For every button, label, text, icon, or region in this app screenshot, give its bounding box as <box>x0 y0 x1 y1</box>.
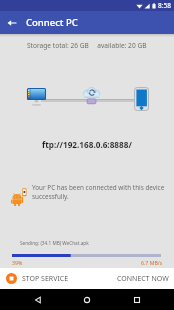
staticText: Storage total: 26 GB available: 20 GB <box>27 41 147 50</box>
staticText: STOP SERVICE <box>22 274 69 284</box>
staticText: ftp://192.168.0.6:8888/ <box>42 139 132 150</box>
staticText: Your PC has been connected with this dev… <box>32 183 168 201</box>
staticText: CONNECT NOW <box>117 274 169 284</box>
staticText: 39% <box>12 259 23 266</box>
button[interactable]: Home <box>75 289 99 310</box>
staticText: 8:58 <box>158 1 171 10</box>
button[interactable]: STOP SERVICE <box>0 268 87 289</box>
staticText: Connect PC <box>26 16 78 29</box>
staticText: 6.7 MB/s <box>141 259 163 266</box>
staticText: Sending: (34.1 MB) WeChat.apk <box>20 240 89 246</box>
button[interactable]: Back <box>0 11 23 34</box>
button[interactable]: CONNECT NOW <box>87 268 174 289</box>
button[interactable]: Back <box>26 289 50 310</box>
button[interactable]: Recents <box>125 289 149 310</box>
